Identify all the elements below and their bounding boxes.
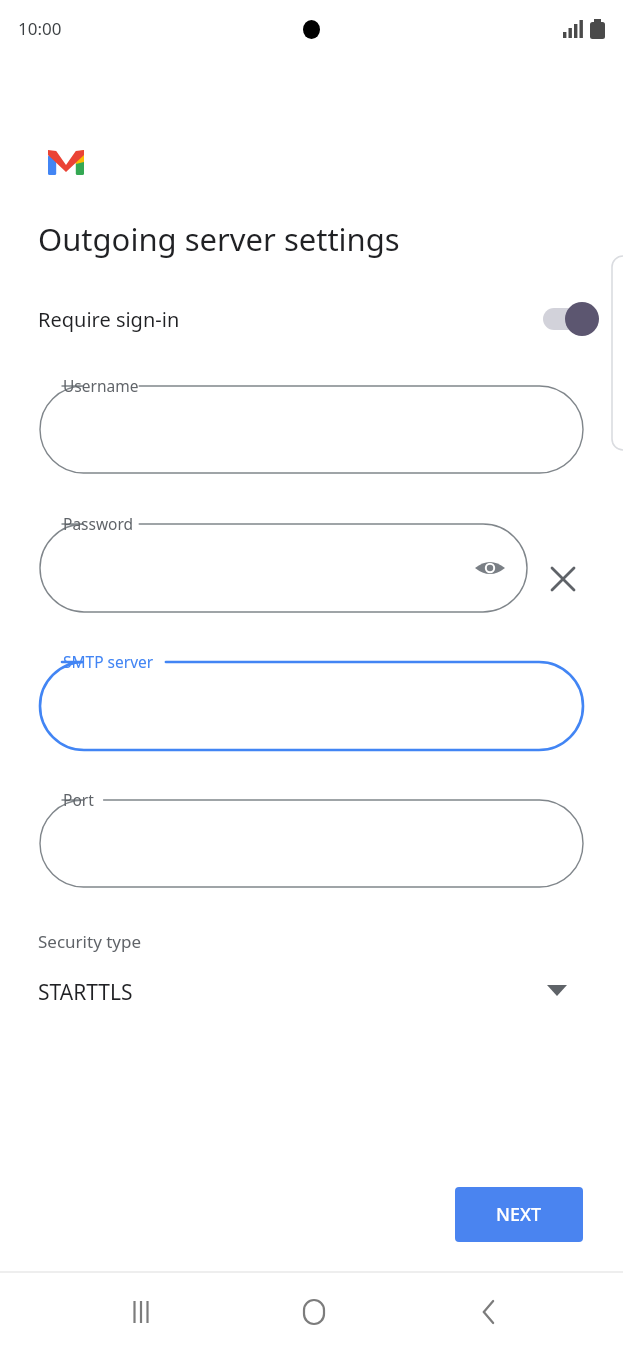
- button[interactable]: [40, 662, 583, 750]
- button[interactable]: Security type: [0, 920, 623, 1020]
- button[interactable]: [40, 800, 583, 887]
- staticText: NEXT: [496, 1202, 542, 1227]
- button[interactable]: Home: [274, 1272, 354, 1351]
- button[interactable]: Require sign-in: [0, 290, 623, 348]
- button[interactable]: Password: [63, 513, 134, 534]
- button[interactable]: [40, 386, 583, 473]
- button[interactable]: Username: [63, 375, 139, 396]
- button[interactable]: Back: [449, 1272, 529, 1351]
- staticText: 10:00: [18, 17, 62, 40]
- button[interactable]: SMTP server: [63, 651, 154, 672]
- staticText: Outgoing server settings: [38, 218, 400, 260]
- button[interactable]: Recent apps: [101, 1272, 181, 1351]
- staticText: STARTTLS: [38, 978, 133, 1007]
- staticText: Require sign-in: [38, 306, 180, 333]
- button[interactable]: Clear: [541, 557, 585, 601]
- button[interactable]: NEXT: [455, 1187, 583, 1242]
- button[interactable]: Port: [63, 789, 94, 810]
- button[interactable]: [40, 524, 527, 612]
- staticText: Security type: [38, 930, 142, 953]
